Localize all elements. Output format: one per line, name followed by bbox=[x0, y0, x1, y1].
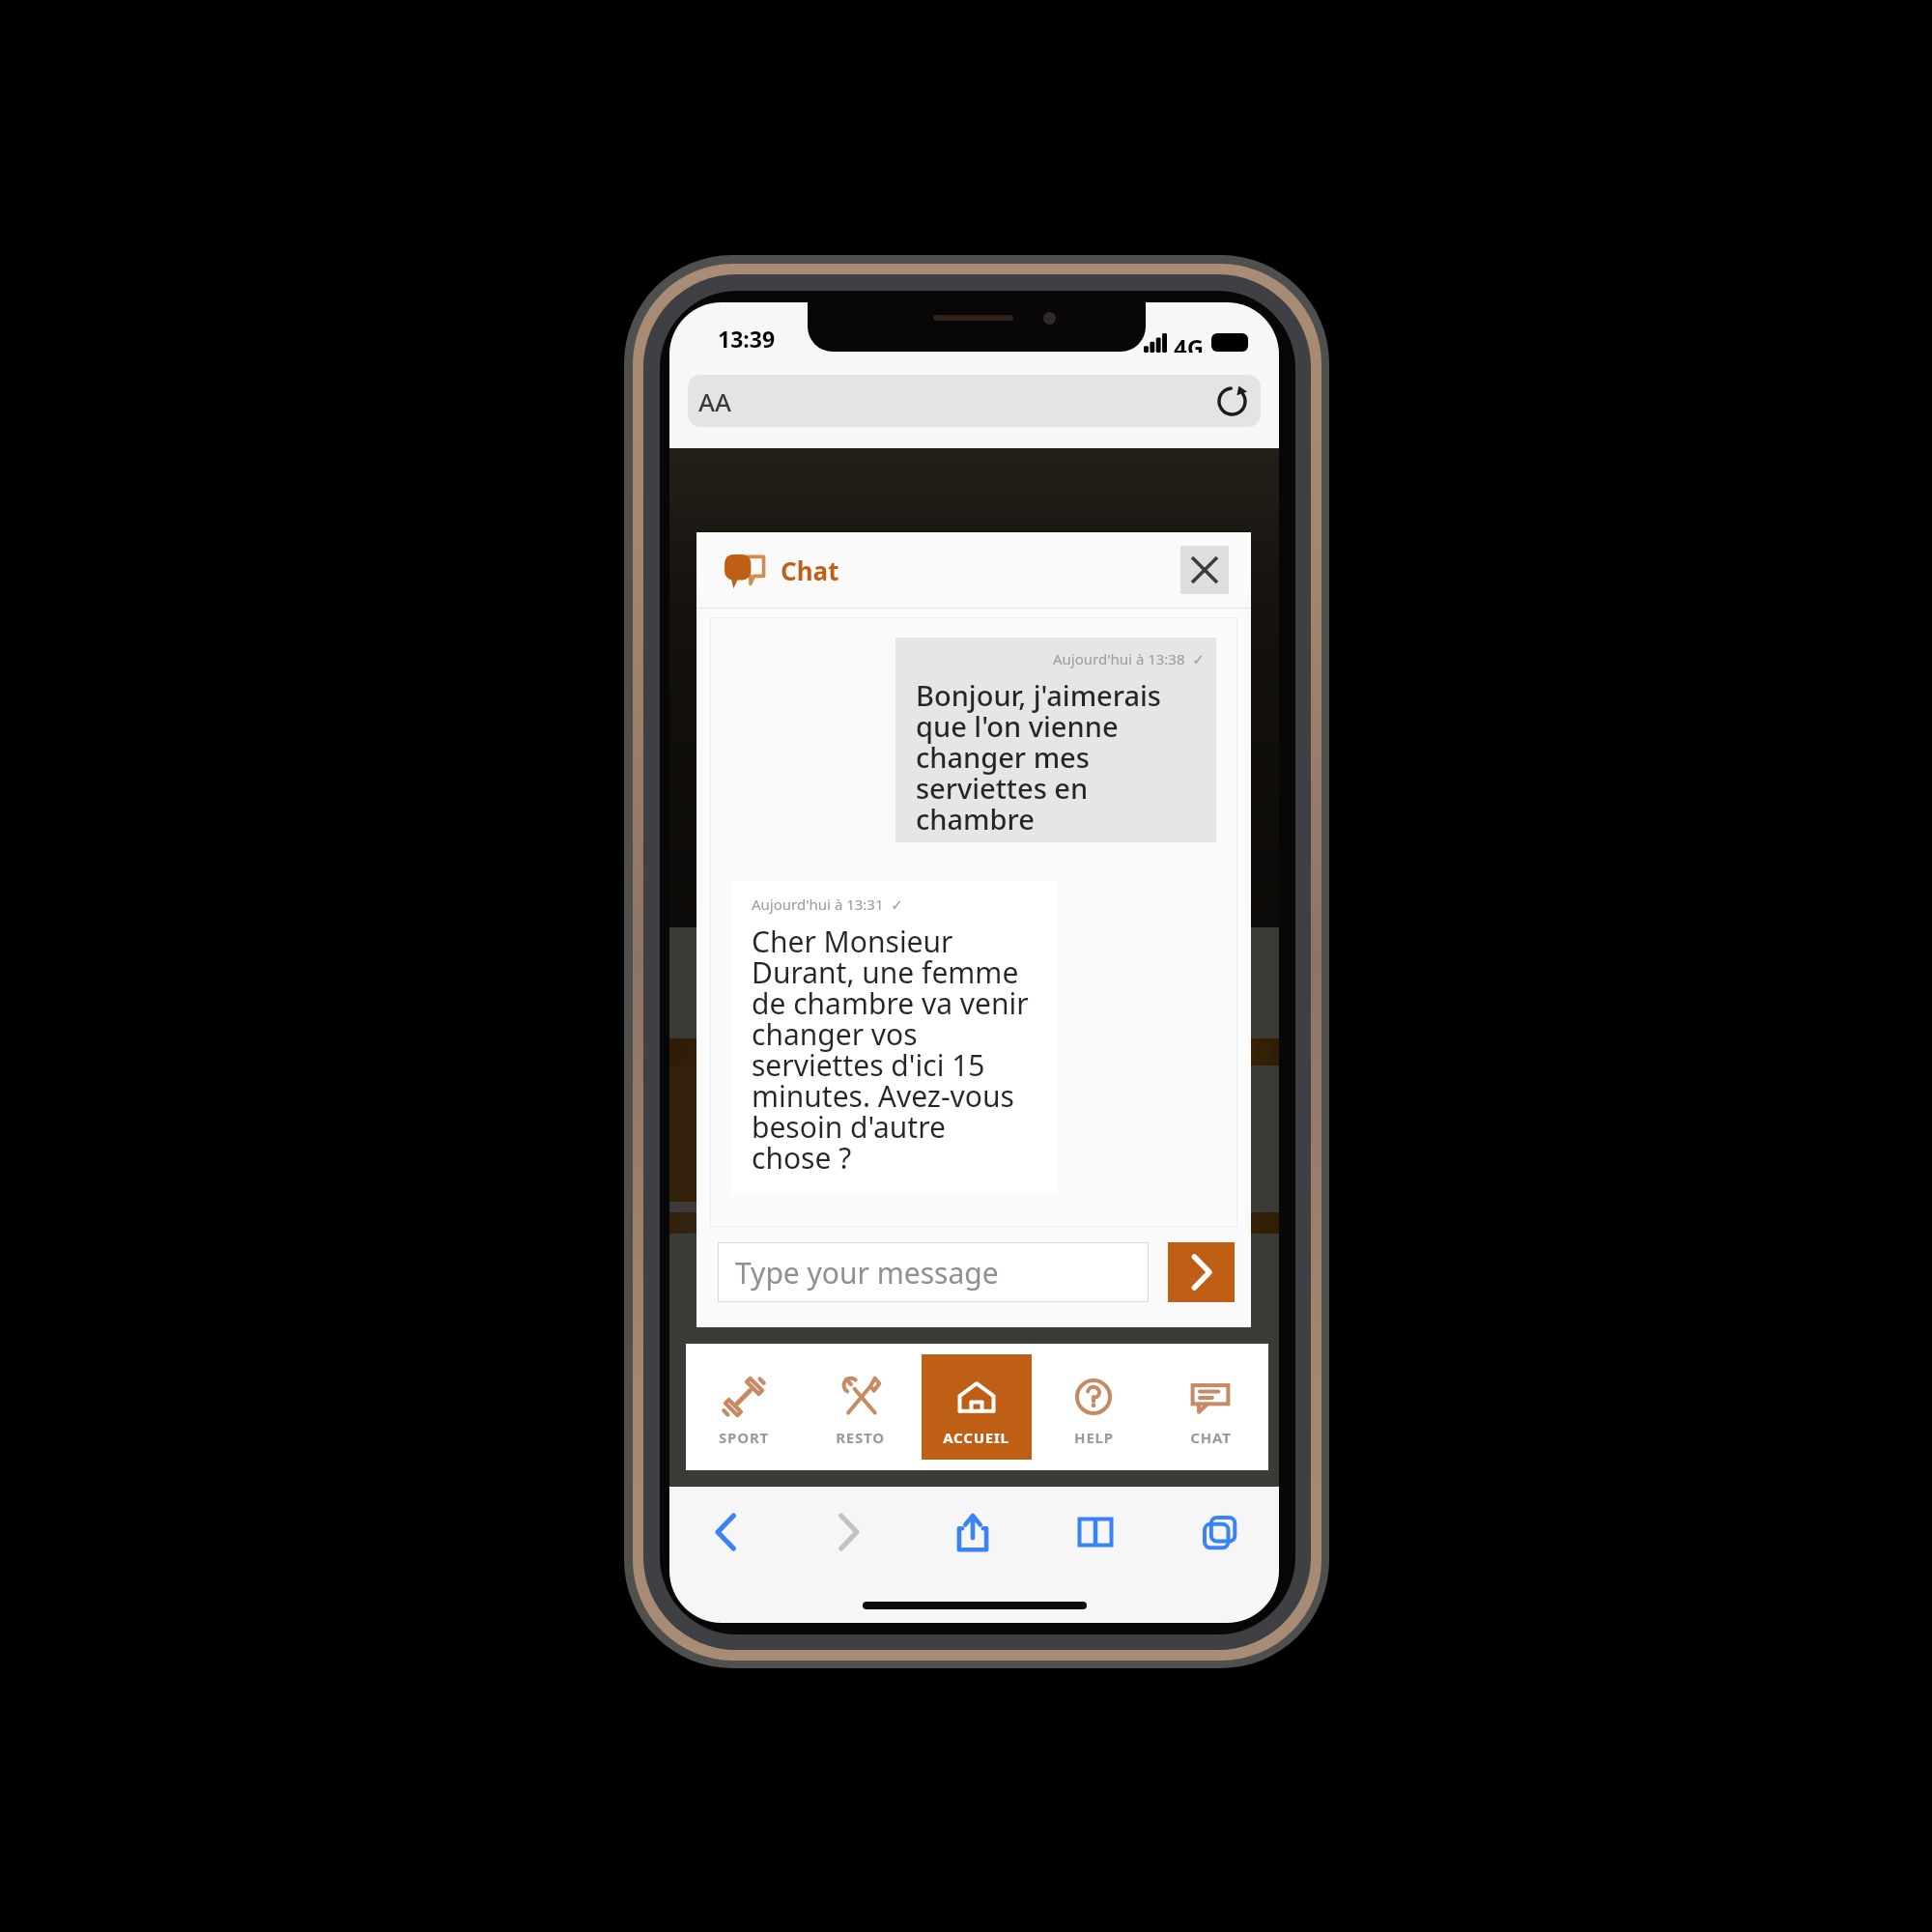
button[interactable]: Close bbox=[1180, 546, 1229, 594]
staticText: ACCUEIL bbox=[943, 1428, 1009, 1447]
staticText: Chat bbox=[781, 554, 839, 587]
staticText: AA bbox=[698, 384, 732, 418]
staticText: RESTO bbox=[836, 1428, 885, 1447]
staticText: HELP bbox=[1074, 1428, 1114, 1447]
button[interactable]: Forward bbox=[819, 1502, 879, 1562]
button[interactable]: AA bbox=[690, 379, 740, 423]
button[interactable]: CHAT bbox=[1151, 1344, 1268, 1470]
staticText: Cher Monsieur Durant, une femme de chamb… bbox=[752, 922, 1049, 1178]
button[interactable]: Reload bbox=[1208, 379, 1255, 423]
button[interactable]: Share bbox=[943, 1502, 1003, 1562]
staticText: Bonjour, j'aimerais que l'on vienne chan… bbox=[916, 676, 1205, 838]
staticText: Aujourd'hui à 13:38 ✓ bbox=[1053, 649, 1205, 668]
button[interactable]: Bookmarks bbox=[1065, 1502, 1125, 1562]
staticText: Type your message bbox=[735, 1253, 999, 1293]
button[interactable]: SPORT bbox=[686, 1344, 802, 1470]
button[interactable]: Type your message bbox=[718, 1242, 1149, 1302]
button[interactable]: Back bbox=[696, 1502, 755, 1562]
button[interactable]: HELP bbox=[1035, 1344, 1151, 1470]
button[interactable]: Send bbox=[1168, 1242, 1235, 1302]
button[interactable]: Tabs bbox=[1189, 1502, 1249, 1562]
staticText: Aujourd'hui à 13:31 ✓ bbox=[752, 895, 903, 914]
staticText: 13:39 bbox=[718, 324, 776, 354]
staticText: 4G bbox=[1174, 331, 1205, 353]
button[interactable]: RESTO bbox=[802, 1344, 918, 1470]
button[interactable]: ACCUEIL bbox=[918, 1344, 1035, 1470]
staticText: CHAT bbox=[1190, 1428, 1232, 1447]
button[interactable]: AA bbox=[688, 375, 1261, 427]
staticText: SPORT bbox=[719, 1428, 769, 1447]
